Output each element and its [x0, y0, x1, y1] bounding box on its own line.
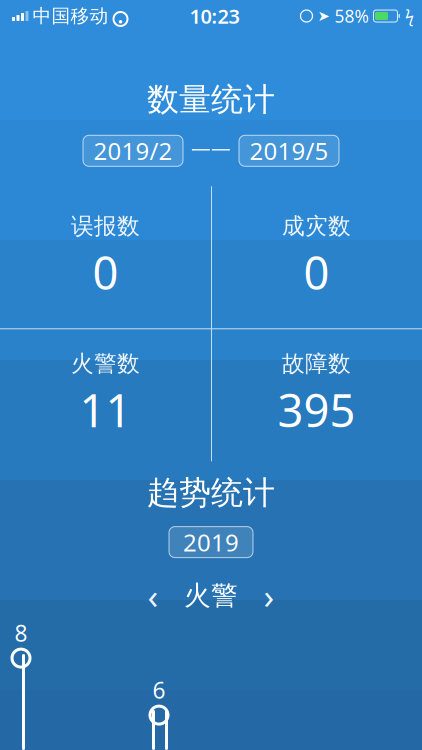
- staticText: 395: [277, 380, 355, 440]
- staticText: 2019: [183, 526, 239, 558]
- button[interactable]: Previous category: [130, 576, 176, 616]
- staticText: 中国移动: [32, 4, 108, 27]
- staticText: 0: [92, 242, 118, 302]
- button[interactable]: 2019/2: [83, 135, 183, 166]
- staticText: ›: [263, 573, 274, 619]
- staticText: 11: [79, 380, 131, 440]
- staticText: 火警数: [71, 350, 140, 378]
- staticText: 2019/2: [93, 135, 172, 167]
- button[interactable]: 2019: [169, 527, 253, 558]
- staticText: 58%: [334, 4, 368, 27]
- staticText: 故障数: [282, 350, 351, 378]
- staticText: 成灾数: [282, 212, 351, 240]
- button[interactable]: 2019/5: [239, 135, 339, 166]
- staticText: 一一: [191, 138, 231, 163]
- staticText: 数量统计: [147, 80, 275, 119]
- staticText: 趋势统计: [147, 473, 275, 513]
- staticText: ϟ: [405, 5, 414, 27]
- staticText: 误报数: [71, 212, 140, 240]
- staticText: 10:23: [189, 3, 239, 29]
- staticText: 0: [303, 242, 329, 302]
- staticText: 2019/5: [249, 135, 328, 167]
- staticText: 6: [152, 675, 165, 705]
- staticText: 火警: [184, 579, 238, 612]
- staticText: 8: [14, 618, 27, 648]
- button[interactable]: Next category: [246, 576, 292, 616]
- staticText: ➤: [317, 8, 329, 24]
- staticText: ‹: [147, 573, 158, 619]
